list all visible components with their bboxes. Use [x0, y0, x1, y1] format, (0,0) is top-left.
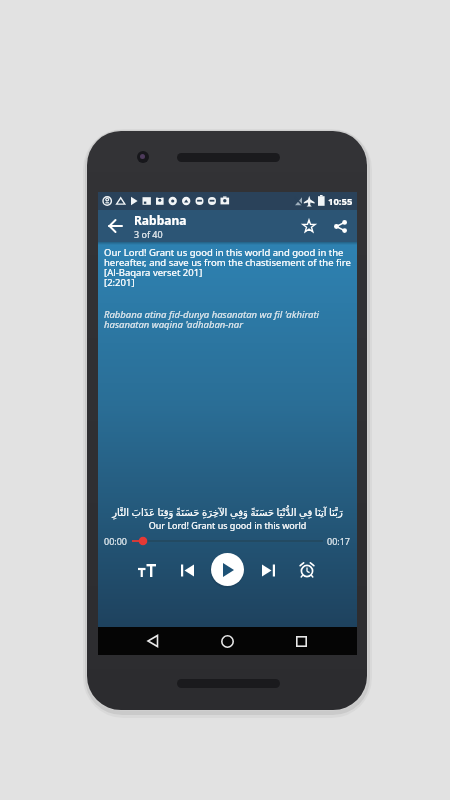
button[interactable]: [175, 558, 199, 582]
button[interactable]: [98, 210, 134, 242]
button[interactable]: [215, 629, 239, 653]
button[interactable]: [289, 629, 313, 653]
staticText: Rabbana: [134, 212, 187, 228]
staticText: رَبَّنَا آتِنَا فِي الدُّنْيَا حَسَنَةً …: [98, 505, 357, 519]
button[interactable]: [134, 558, 160, 582]
staticText: Our Lord! Grant us good in this world an…: [104, 246, 351, 289]
button[interactable]: [325, 210, 355, 242]
staticText: 00:17: [327, 535, 351, 547]
staticText: Our Lord! Grant us good in this world: [98, 519, 357, 531]
staticText: 10:55: [328, 195, 353, 208]
button[interactable]: [295, 558, 319, 582]
button[interactable]: [211, 553, 244, 586]
button[interactable]: [256, 558, 280, 582]
button[interactable]: [141, 629, 165, 653]
staticText: Rabbana atina fid-dunya hasanatan wa fil…: [104, 308, 351, 331]
staticText: 00:00: [104, 535, 128, 547]
staticText: 3 of 40: [134, 228, 163, 240]
button[interactable]: [293, 210, 325, 242]
